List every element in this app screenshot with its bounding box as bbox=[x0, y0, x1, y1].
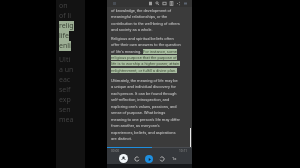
button[interactable]: Play bbox=[145, 155, 153, 163]
staticText: enlightenment, or fulfill a divine plan. bbox=[111, 68, 177, 73]
button[interactable]: Notes bbox=[169, 1, 174, 6]
staticText: Ulti bbox=[59, 55, 71, 65]
staticText: self bbox=[59, 85, 71, 95]
staticText: exploring one's values, passions, and bbox=[111, 104, 177, 109]
staticText: 1x bbox=[172, 156, 177, 161]
staticText: a un bbox=[59, 65, 74, 75]
staticText: of life's meaning. bbox=[111, 49, 143, 54]
staticText: of li bbox=[59, 11, 72, 21]
button[interactable]: Bookmark bbox=[148, 1, 153, 6]
button[interactable]: Share bbox=[176, 1, 181, 6]
staticText: on bbox=[59, 1, 68, 11]
staticText: a unique and individual discovery for bbox=[111, 84, 176, 89]
button[interactable]: Rewind bbox=[133, 155, 140, 162]
staticText: enli bbox=[59, 41, 71, 51]
staticText: and society as a whole. bbox=[111, 27, 153, 32]
staticText: 10:11 bbox=[179, 149, 188, 153]
staticText: mea bbox=[59, 115, 74, 125]
staticText: meaningful relationships, or the bbox=[111, 14, 168, 19]
staticText: from another, as everyone's bbox=[111, 123, 160, 128]
staticText: life is to worship a higher power, attai… bbox=[111, 61, 180, 66]
staticText: life bbox=[59, 31, 69, 41]
button[interactable]: Voice bbox=[119, 154, 128, 163]
staticText: offer their own answers to the question bbox=[111, 42, 181, 47]
staticText: each person. It can be found through bbox=[111, 91, 177, 96]
staticText: of knowledge, the development of bbox=[111, 8, 172, 13]
button[interactable]: Search bbox=[155, 1, 160, 6]
staticText: 00:00 bbox=[111, 149, 120, 153]
staticText: meaning to one person's life may differ bbox=[111, 117, 180, 122]
button[interactable]: 1x bbox=[171, 155, 178, 162]
staticText: relig bbox=[59, 21, 74, 31]
staticText: exp bbox=[59, 95, 71, 105]
staticText: experiences, beliefs, and aspirations bbox=[111, 130, 176, 135]
staticText: self-reflection, introspection, and bbox=[111, 97, 170, 102]
button[interactable]: Forward bbox=[158, 155, 165, 162]
button[interactable]: More bbox=[183, 1, 188, 6]
staticText: Ultimately, the meaning of life may be bbox=[111, 78, 178, 83]
staticText: contribution to the well-being of others bbox=[111, 21, 180, 26]
button[interactable]: Crop bbox=[162, 1, 167, 6]
staticText: sen bbox=[59, 105, 71, 115]
staticText: sense of purpose. What brings bbox=[111, 110, 166, 115]
staticText: are distinct. bbox=[111, 136, 132, 141]
button[interactable]: Back bbox=[112, 1, 117, 6]
staticText: eac bbox=[59, 75, 71, 85]
staticText: religious purpose that the purpose of bbox=[111, 55, 177, 60]
staticText: For instance, some bbox=[143, 49, 177, 54]
staticText: Religious and spiritual beliefs often bbox=[111, 36, 174, 41]
